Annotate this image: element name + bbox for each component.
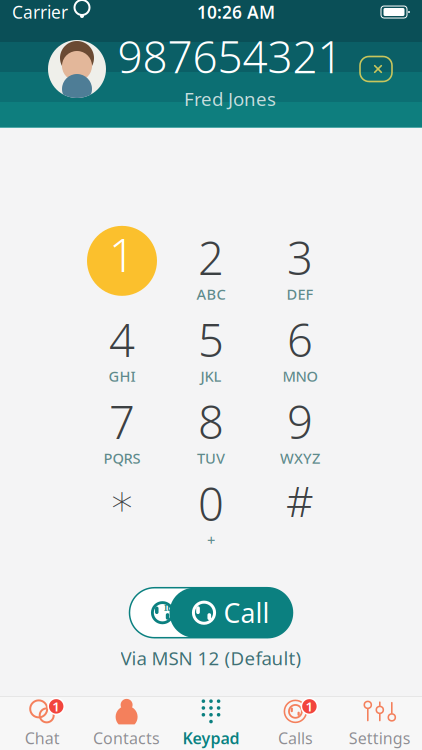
staticText: 10:26 AM [197,0,275,23]
button[interactable]: 1 [0,698,84,748]
staticText: 1 [52,697,60,715]
button[interactable]: 6 [255,304,344,382]
staticText: 1 [305,697,313,715]
button[interactable]: 5 [166,304,255,382]
button[interactable]: Keypad [169,698,253,748]
button[interactable]: # [255,468,344,546]
button[interactable]: Delete [354,49,398,89]
button[interactable]: 2 [166,222,255,300]
staticText: DEF [286,284,313,304]
staticText: 0 [198,473,224,533]
staticText: JKL [200,366,221,386]
button[interactable]: 1 [77,222,166,300]
staticText: Fred Jones [184,86,276,111]
staticText: 3 [287,227,313,287]
button[interactable]: 3 [255,222,344,300]
staticText: 6 [287,309,313,369]
staticText: ID [164,601,174,613]
button[interactable]: 9 [255,386,344,464]
staticText: Settings [349,727,411,749]
button[interactable]: 1 [253,698,338,748]
staticText: 2 [198,227,224,287]
staticText: Call [223,595,269,630]
button[interactable]: 8 [166,386,255,464]
staticText: 9 [287,391,313,451]
staticText: ∗ [108,476,135,524]
button[interactable]: 7 [77,386,166,464]
staticText: Calls [278,727,313,749]
staticText: Via MSN 12 (Default) [120,646,301,670]
button[interactable]: 0 [166,468,255,546]
staticText: 987654321 [117,27,342,85]
button[interactable]: Settings [338,698,422,748]
staticText: ABC [196,284,225,304]
button[interactable]: ∗ [77,468,166,546]
staticText: Chat [25,727,60,749]
button[interactable]: 4 [77,304,166,382]
staticText: Contacts [93,727,160,749]
staticText: 4 [109,309,135,369]
staticText: + [207,530,215,550]
staticText: Carrier [12,0,68,23]
staticText: MNO [282,366,317,386]
staticText: 7 [109,391,135,451]
button[interactable]: Contacts [84,698,169,748]
staticText: PQRS [103,448,140,468]
staticText: TUV [197,448,225,468]
staticText: GHI [108,366,135,386]
staticText: 8 [198,391,224,451]
staticText: 5 [198,309,224,369]
staticText: # [286,472,314,529]
staticText: 1 [109,224,135,284]
staticText: Keypad [182,727,239,749]
staticText: WXYZ [280,448,320,468]
button[interactable]: Call [169,588,292,638]
